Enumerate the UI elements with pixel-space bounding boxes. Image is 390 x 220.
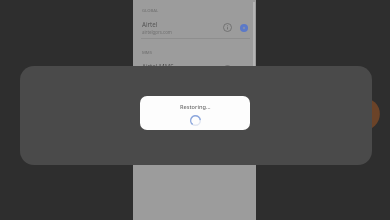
staticText: Airtel MMS bbox=[142, 62, 174, 70]
staticText: airtelgprs.com bbox=[142, 29, 172, 35]
button[interactable]: Restoring… bbox=[140, 96, 250, 130]
button[interactable]: Airtel MMS bbox=[133, 58, 256, 80]
staticText: Airtel bbox=[142, 20, 158, 28]
staticText: MMS bbox=[142, 50, 152, 56]
staticText: Restoring… bbox=[180, 103, 211, 111]
staticText: GLOBAL bbox=[142, 8, 159, 14]
button[interactable]: Edit APN details bbox=[222, 64, 233, 75]
button[interactable]: Airtel bbox=[133, 16, 256, 38]
button[interactable]: Select APN bbox=[238, 22, 249, 33]
button[interactable]: Edit APN details bbox=[222, 22, 233, 33]
